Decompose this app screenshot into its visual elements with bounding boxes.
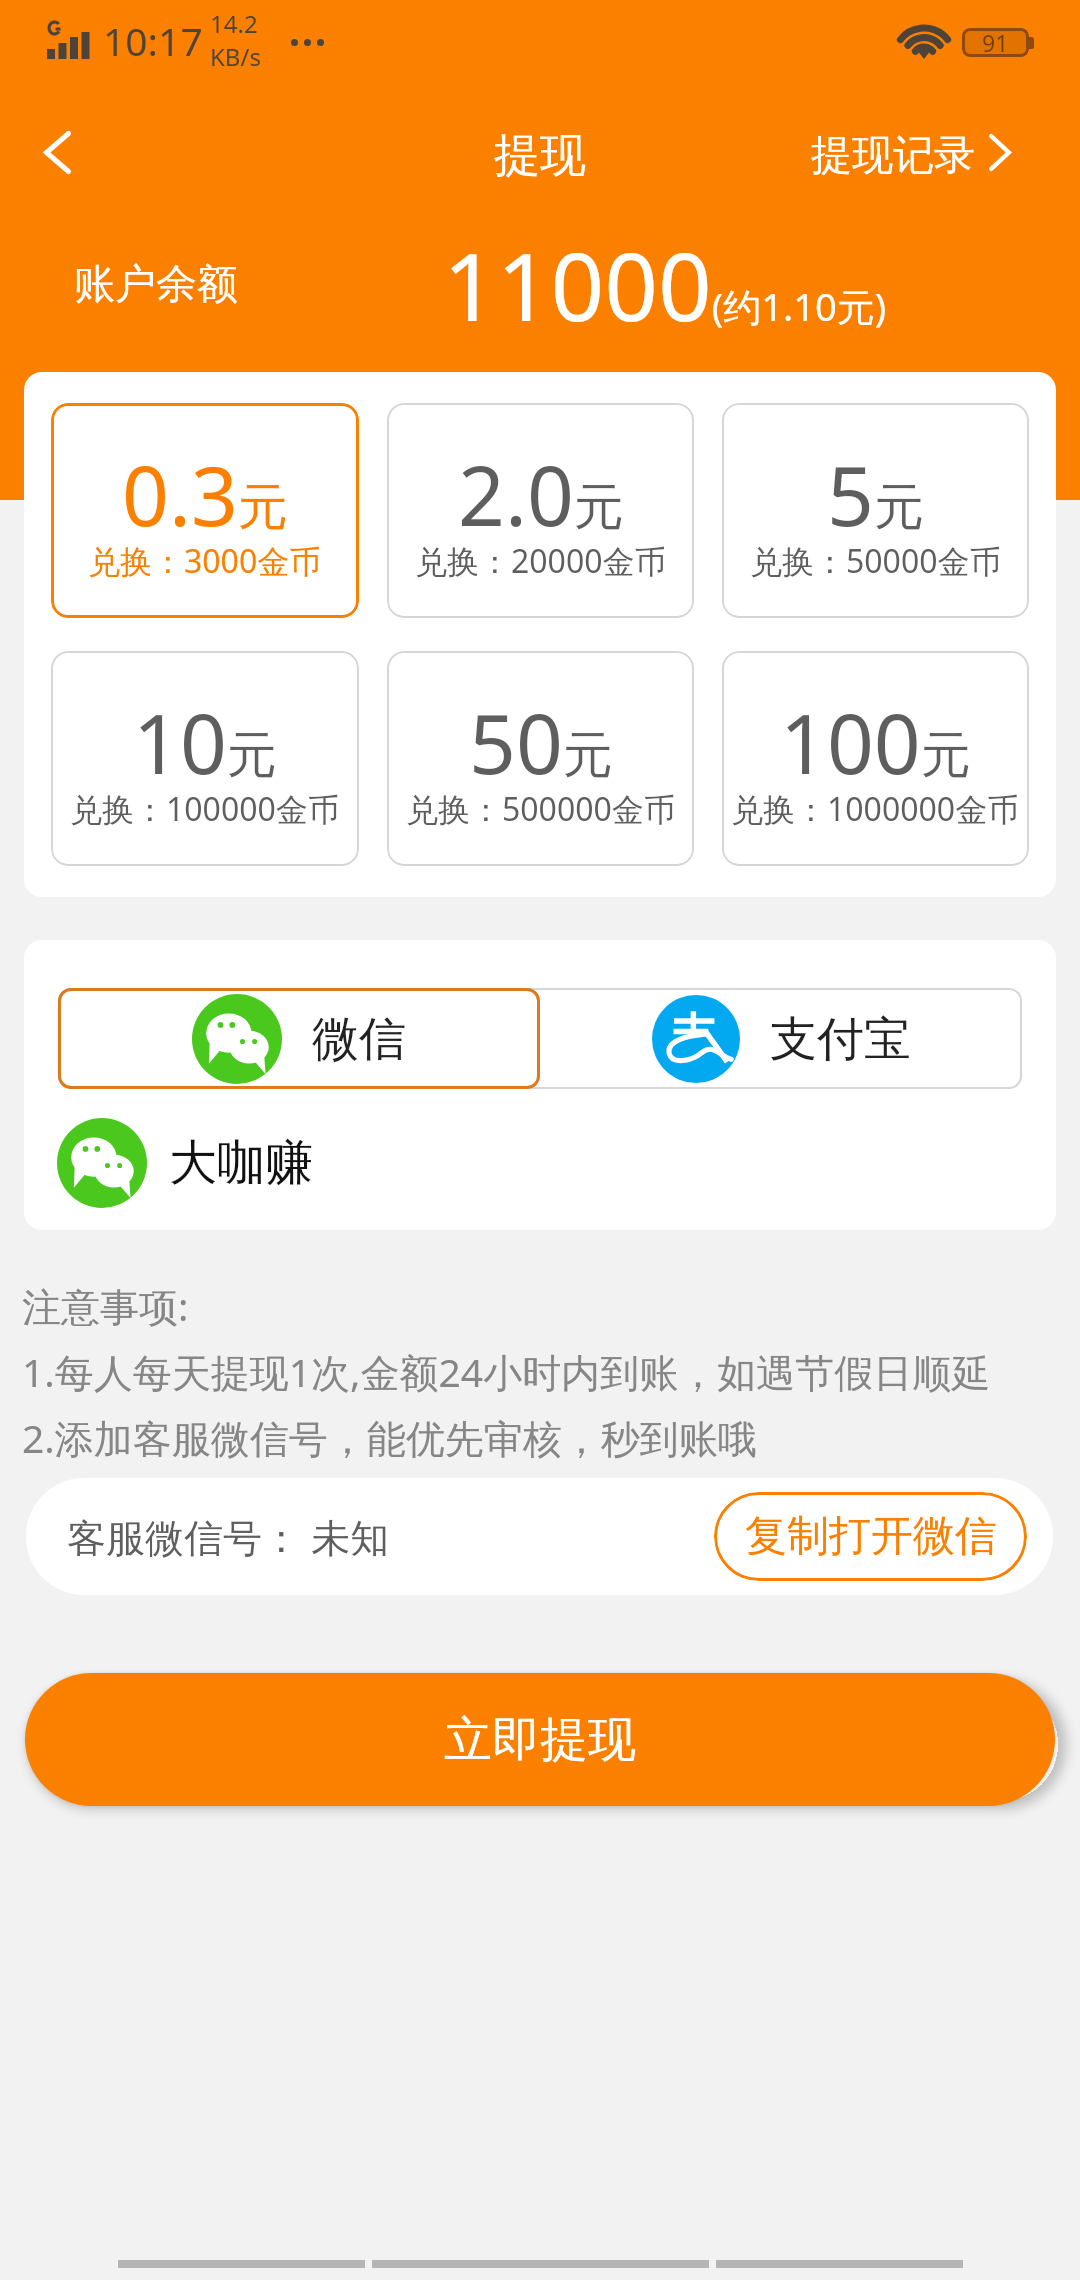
button[interactable]: 100元: [722, 651, 1029, 866]
staticText: 100元: [780, 686, 971, 798]
staticText: 兑换：50000金币: [750, 539, 1002, 583]
staticText: 兑换：1000000金币: [731, 787, 1020, 831]
staticText: 兑换：3000金币: [88, 539, 322, 583]
staticText: 提现: [494, 127, 586, 185]
staticText: 兑换：20000金币: [415, 539, 667, 583]
staticText: 11000(约1.10元): [443, 221, 887, 349]
button[interactable]: 大咖赚: [57, 1118, 313, 1208]
button[interactable]: 复制打开微信: [714, 1492, 1027, 1581]
staticText: 50元: [469, 686, 613, 798]
staticText: 91: [982, 28, 1009, 56]
staticText: KB/s: [210, 40, 261, 73]
staticText: 支付宝: [770, 1010, 911, 1069]
staticText: 提现记录: [811, 130, 975, 182]
button[interactable]: 支付宝: [540, 988, 1022, 1089]
button[interactable]: 微信: [58, 988, 540, 1089]
staticText: 大咖赚: [169, 1133, 313, 1193]
button[interactable]: 提现记录: [807, 116, 1015, 188]
staticText: 10:17: [103, 14, 203, 67]
staticText: 5元: [827, 438, 924, 550]
button[interactable]: Back: [14, 109, 100, 195]
button[interactable]: 2.0元: [387, 403, 694, 618]
staticText: 10元: [133, 686, 277, 798]
staticText: 微信: [312, 1010, 406, 1069]
button[interactable]: 50元: [387, 651, 694, 866]
button[interactable]: 0.3元: [51, 403, 359, 618]
button[interactable]: 5元: [722, 403, 1029, 618]
staticText: 2.0元: [458, 438, 624, 550]
staticText: 注意事项:: [22, 1279, 189, 1332]
staticText: 1.每人每天提现1次,金额24小时内到账，如遇节假日顺延: [22, 1345, 991, 1398]
staticText: 14.2: [210, 7, 258, 40]
staticText: 立即提现: [444, 1710, 636, 1770]
button[interactable]: 10元: [51, 651, 359, 866]
staticText: 客服微信号： 未知: [67, 1510, 390, 1563]
staticText: 兑换：100000金币: [70, 787, 340, 831]
staticText: 2.添加客服微信号，能优先审核，秒到账哦: [22, 1411, 757, 1464]
button[interactable]: 立即提现: [25, 1673, 1055, 1806]
staticText: 0.3元: [122, 438, 288, 550]
staticText: 账户余额: [74, 259, 238, 311]
staticText: 复制打开微信: [745, 1510, 997, 1563]
staticText: 兑换：500000金币: [406, 787, 676, 831]
